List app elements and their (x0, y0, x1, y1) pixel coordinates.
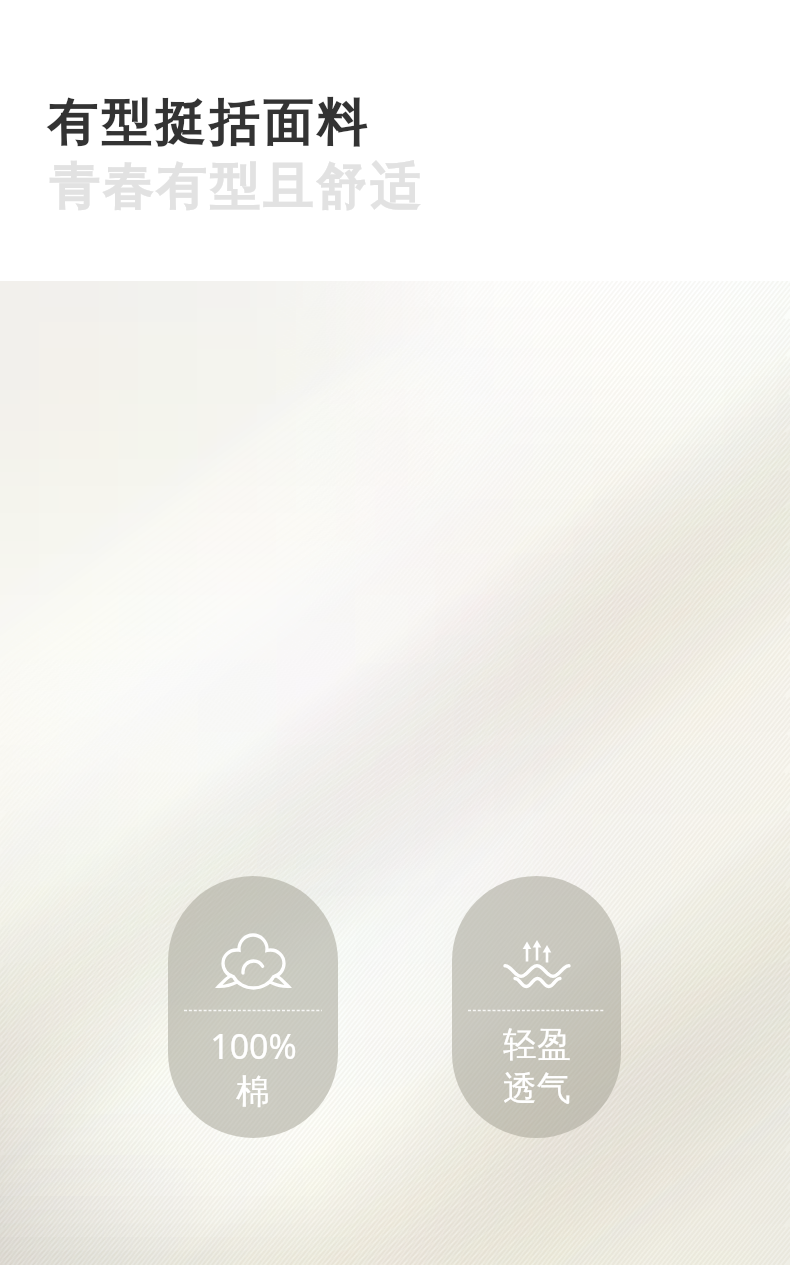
button[interactable]: Breathable (452, 876, 621, 1138)
staticText: 棉 (236, 1070, 270, 1113)
other: Breathable (503, 940, 571, 987)
button[interactable]: 100% cotton (168, 876, 338, 1138)
staticText: 100% (210, 1023, 297, 1069)
staticText: 透气 (503, 1067, 571, 1110)
staticText: 有型挺括面料 (47, 92, 371, 155)
other: 100% cotton (217, 935, 290, 988)
staticText: 青春有型且舒适 (49, 156, 423, 219)
staticText: 轻盈 (503, 1023, 571, 1066)
